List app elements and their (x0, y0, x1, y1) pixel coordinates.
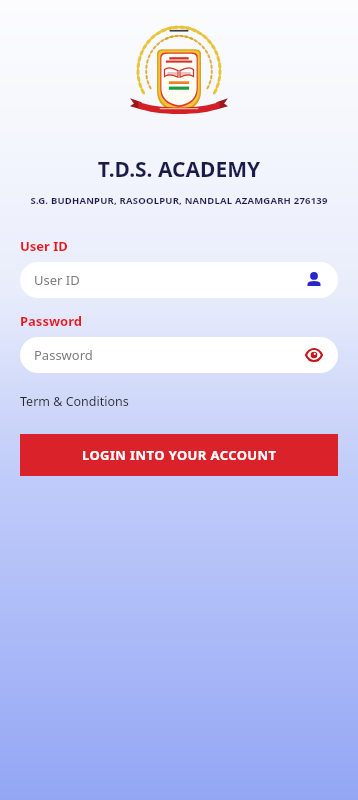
button[interactable]: User ID (20, 262, 338, 298)
staticText: Term & Conditions (20, 393, 129, 410)
button[interactable]: Term & Conditions (20, 391, 129, 412)
staticText: LOGIN INTO YOUR ACCOUNT (82, 446, 277, 464)
button[interactable]: Password (20, 337, 338, 373)
staticText: T.D.S. ACADEMY (0, 155, 358, 184)
staticText: User ID (20, 237, 68, 255)
staticText: User ID (34, 271, 304, 289)
staticText: Password (34, 346, 304, 364)
other: User account (304, 270, 324, 290)
button[interactable]: LOGIN INTO YOUR ACCOUNT (20, 434, 338, 476)
other: Show password (304, 345, 324, 365)
staticText: S.G. BUDHANPUR, RASOOLPUR, NANDLAL AZAMG… (0, 194, 358, 207)
staticText: Password (20, 312, 82, 330)
